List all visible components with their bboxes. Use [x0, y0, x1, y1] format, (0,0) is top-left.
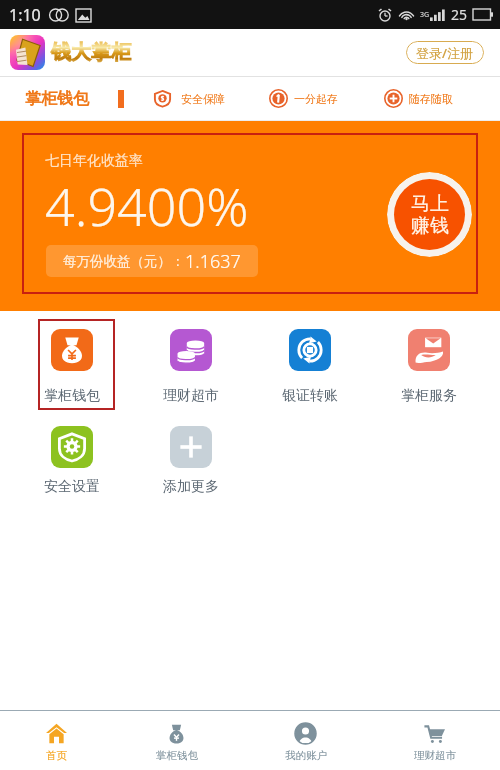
button[interactable]: 马上 赚钱 [387, 172, 472, 257]
staticText: 首页 [46, 749, 67, 762]
staticText: 钱大掌柜 [51, 40, 131, 65]
staticText: 掌柜钱包 [25, 89, 89, 109]
staticText: 4.9400% [45, 170, 249, 241]
button[interactable]: 理财超市 [395, 711, 474, 762]
staticText: 每万份收益（元）： [63, 253, 185, 270]
staticText: 掌柜服务 [401, 387, 457, 405]
staticText: 理财超市 [163, 387, 219, 405]
staticText: 1:10 [9, 4, 41, 26]
staticText: 添加更多 [163, 478, 219, 496]
button[interactable]: 安全设置 [12, 426, 131, 496]
button[interactable]: 掌柜钱包 [137, 711, 216, 762]
button[interactable]: 掌柜服务 [369, 329, 488, 405]
staticText: 掌柜钱包 [44, 387, 100, 405]
staticText: 安全设置 [44, 478, 100, 496]
button[interactable]: 添加更多 [131, 426, 250, 496]
staticText: 登录/注册 [416, 44, 474, 62]
staticText: 掌柜钱包 [156, 749, 198, 762]
button[interactable]: 安全保障 [153, 89, 225, 108]
staticText: 1.1637 [185, 249, 241, 274]
button[interactable]: 一分起存 [269, 89, 338, 108]
button[interactable]: 掌柜钱包 [12, 329, 131, 405]
staticText: 马上 赚钱 [411, 192, 449, 238]
staticText: 25 [451, 5, 468, 24]
staticText: 银证转账 [282, 387, 338, 405]
staticText: 一分起存 [294, 92, 338, 106]
staticText: 3G [420, 10, 430, 20]
button[interactable]: 银证转账 [250, 329, 369, 405]
staticText: 理财超市 [414, 749, 456, 762]
staticText: 安全保障 [181, 92, 225, 106]
button[interactable]: 我的账户 [266, 711, 345, 762]
staticText: 七日年化收益率 [45, 152, 143, 170]
staticText: 我的账户 [285, 749, 327, 762]
button[interactable]: 随存随取 [384, 89, 453, 108]
button[interactable]: 首页 [17, 711, 96, 762]
staticText: 随存随取 [409, 92, 453, 106]
button[interactable]: 理财超市 [131, 329, 250, 405]
button[interactable]: 掌柜钱包 [25, 89, 89, 109]
button[interactable]: 登录/注册 [406, 41, 484, 64]
